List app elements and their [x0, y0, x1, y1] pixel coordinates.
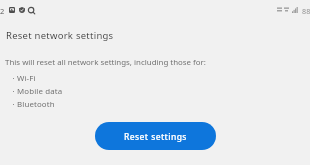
- staticText: Wi-Fi: [17, 73, 36, 84]
- staticText: Mobile data: [17, 86, 63, 97]
- button[interactable]: Reset settings: [95, 122, 216, 150]
- staticText: This will reset all network settings, in…: [5, 57, 206, 68]
- other: Secure Wi-Fi: [19, 7, 25, 13]
- staticText: Reset network settings: [6, 29, 114, 42]
- other: Search: [28, 7, 35, 14]
- other: LTE: [284, 7, 289, 13]
- staticText: 88: [302, 6, 310, 16]
- staticText: Bluetooth: [17, 99, 55, 110]
- other: VoLTE: [277, 7, 282, 13]
- staticText: 2: [0, 6, 5, 16]
- other: Screenshot captured: [9, 7, 15, 13]
- other: Mobile signal strength: [292, 7, 298, 13]
- staticText: Reset settings: [124, 131, 187, 143]
